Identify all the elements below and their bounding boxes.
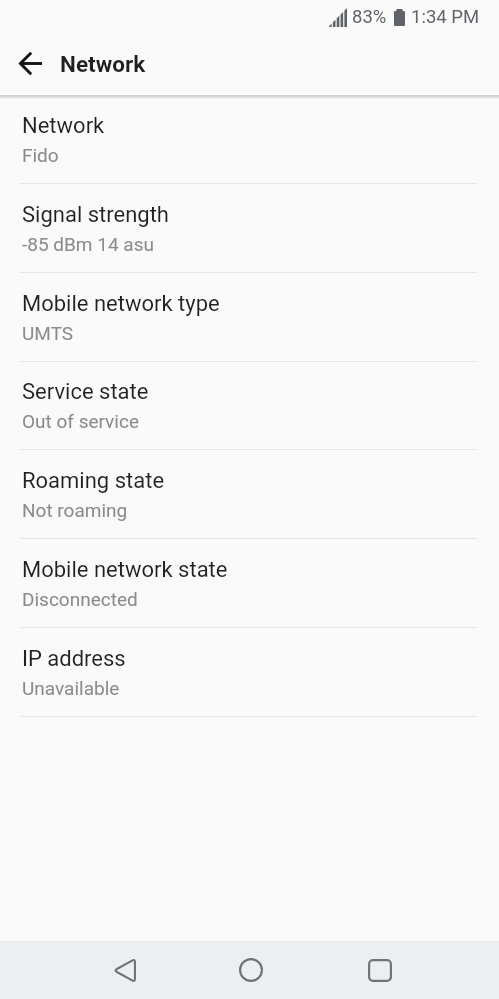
staticText: Signal strength (22, 202, 169, 228)
button[interactable]: Home (207, 941, 295, 999)
staticText: Roaming state (22, 468, 165, 494)
staticText: Mobile network state (22, 557, 228, 583)
button[interactable]: Recent apps (336, 941, 424, 999)
staticText: IP address (22, 646, 126, 672)
button[interactable]: Mobile network state (0, 539, 499, 628)
staticText: Network (60, 51, 146, 77)
staticText: Out of service (22, 410, 139, 432)
staticText: Network (22, 113, 105, 139)
button[interactable]: Signal strength (0, 184, 499, 273)
button[interactable]: Service state (0, 361, 499, 450)
staticText: Mobile network type (22, 291, 220, 317)
staticText: -85 dBm 14 asu (22, 233, 154, 255)
button[interactable]: Back (80, 941, 168, 999)
button[interactable]: Mobile network type (0, 273, 499, 362)
button[interactable]: IP address (0, 628, 499, 717)
staticText: 83% (352, 6, 387, 28)
staticText: Not roaming (22, 499, 128, 521)
staticText: Service state (22, 379, 149, 405)
button[interactable]: Back (0, 34, 60, 94)
button[interactable]: Roaming state (0, 450, 499, 539)
button[interactable]: Network (0, 95, 499, 184)
staticText: 1:34 PM (411, 6, 480, 28)
staticText: UMTS (22, 322, 74, 344)
staticText: Disconnected (22, 588, 138, 610)
staticText: Fido (22, 144, 59, 166)
staticText: Unavailable (22, 677, 120, 699)
